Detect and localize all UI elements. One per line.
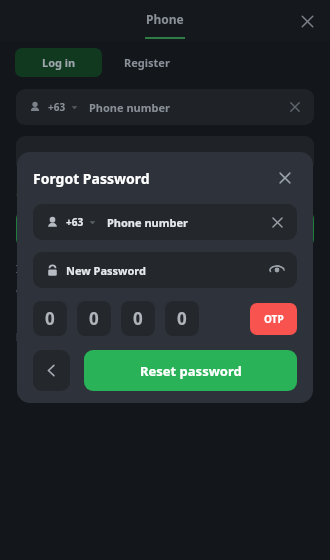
staticText: +63 bbox=[48, 100, 66, 114]
button[interactable]: Sign Up bbox=[151, 330, 189, 344]
button[interactable]: OTP digit 2 bbox=[77, 301, 111, 336]
staticText: and I have read the bbox=[16, 282, 116, 296]
button[interactable]: Close bbox=[294, 8, 320, 34]
staticText: Don't you have an account bbox=[16, 330, 151, 344]
staticText: Forgot Password bbox=[33, 169, 150, 188]
staticText: Phone number bbox=[89, 100, 170, 115]
button[interactable]: Reset password bbox=[84, 350, 297, 391]
staticText: Register bbox=[124, 55, 170, 70]
staticText: 0 bbox=[133, 307, 143, 330]
staticText: Phone bbox=[146, 11, 184, 27]
staticText: Terms of Service bbox=[116, 282, 198, 296]
button[interactable]: OTP digit 3 bbox=[121, 301, 155, 336]
staticText: I agree to the bbox=[16, 262, 87, 276]
staticText: 0 bbox=[89, 307, 99, 330]
button[interactable]: +63 bbox=[33, 204, 297, 240]
staticText: Forgot Password bbox=[16, 183, 100, 197]
staticText: Sign Up bbox=[151, 330, 189, 344]
button[interactable]: Register bbox=[124, 55, 170, 70]
staticText: Phone number bbox=[107, 215, 188, 230]
staticText: New Password bbox=[66, 263, 146, 278]
staticText: 0 bbox=[45, 307, 55, 330]
button[interactable]: Close dialog bbox=[273, 166, 297, 190]
button[interactable]: +63 bbox=[16, 89, 314, 125]
button[interactable]: New Password bbox=[33, 252, 297, 288]
button[interactable]: Back bbox=[33, 350, 70, 391]
button[interactable]: OTP digit 4 bbox=[165, 301, 199, 336]
staticText: +63 bbox=[66, 215, 84, 229]
staticText: Reset password bbox=[140, 362, 242, 380]
staticText: 0 bbox=[177, 307, 187, 330]
staticText: OTP bbox=[264, 312, 284, 326]
staticText: Privacy Policy bbox=[87, 262, 156, 276]
button[interactable]: OTP bbox=[250, 303, 297, 335]
button[interactable]: OTP digit 1 bbox=[33, 301, 67, 336]
button[interactable]: Log in bbox=[15, 48, 102, 77]
staticText: Log in bbox=[42, 55, 76, 70]
